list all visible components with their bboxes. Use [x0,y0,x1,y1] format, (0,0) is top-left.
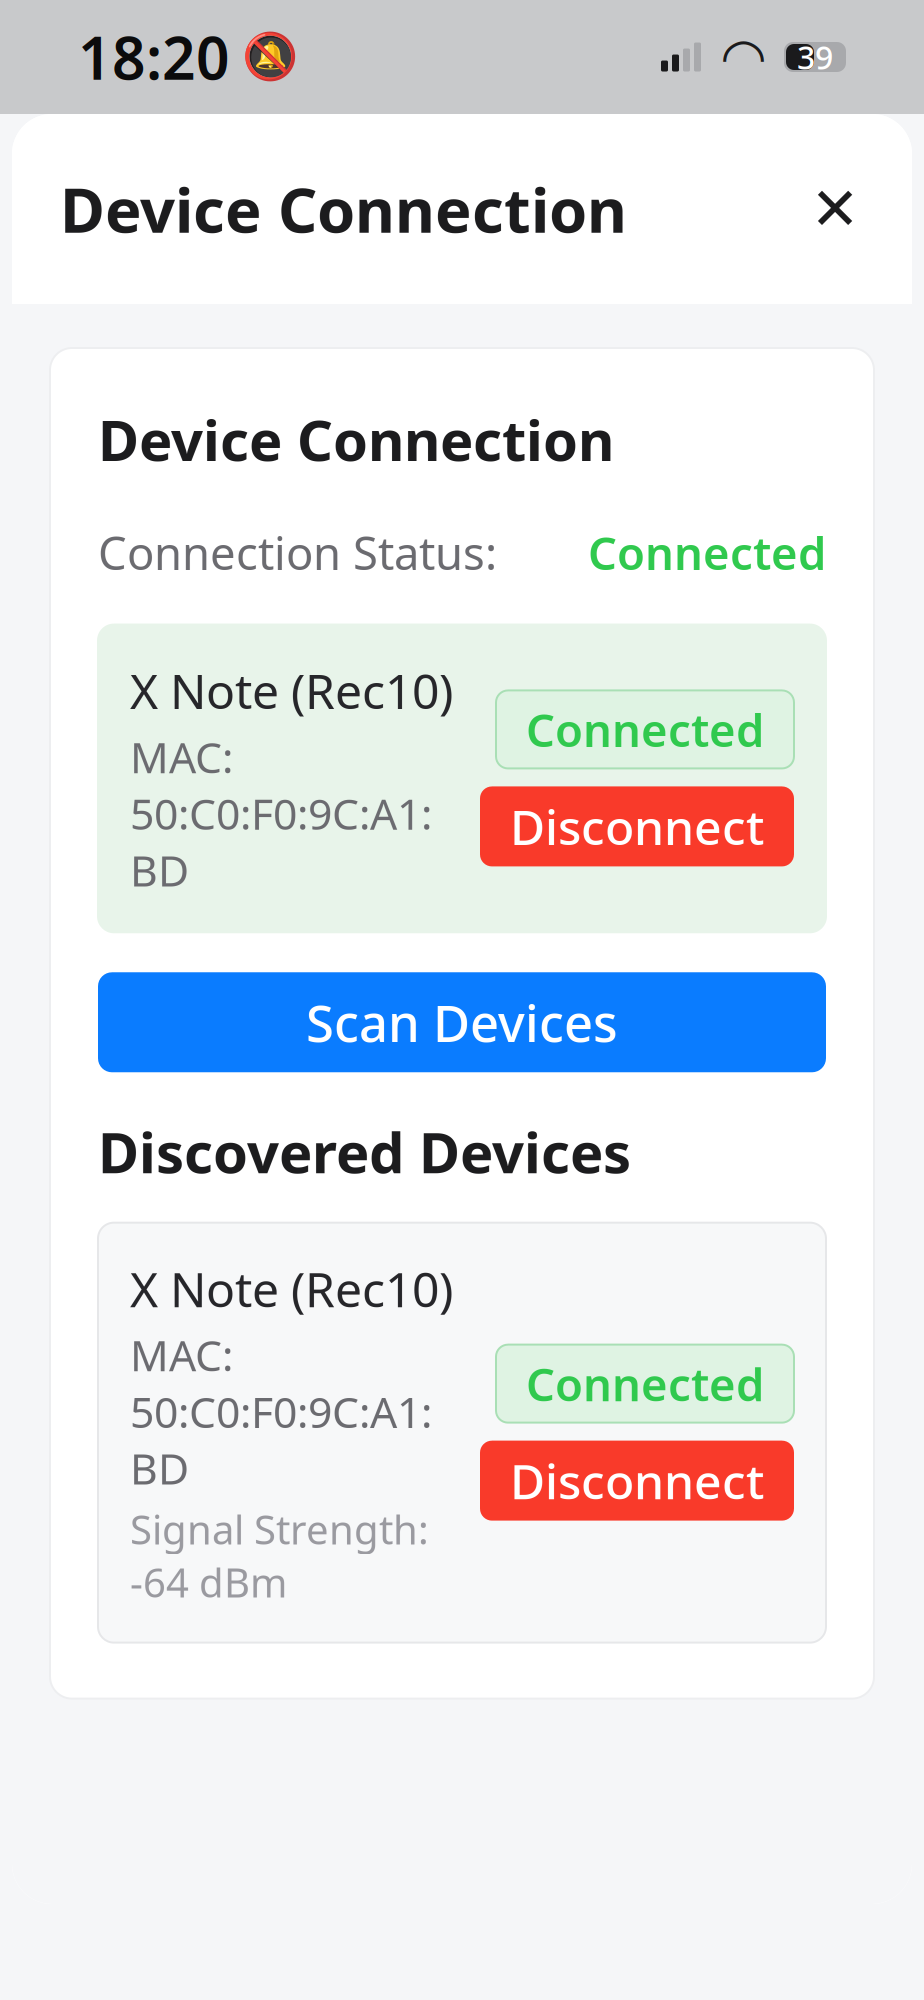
staticText: Discovered Devices [98,1114,631,1189]
staticText: Device Connection [60,168,627,250]
staticText: ✕ [810,176,859,242]
button[interactable]: Disconnect [480,1441,794,1521]
staticText: Connected [526,699,764,759]
button[interactable]: Disconnect [480,786,794,866]
staticText: ◠ [723,27,764,87]
staticText: Disconnect [510,795,764,858]
staticText: Connected [588,522,826,583]
staticText: 18:20 [78,18,230,96]
staticText: Device Connection [98,402,614,476]
staticText: 39 [797,36,833,78]
button[interactable]: Connected [496,690,794,768]
staticText: 🔕 [242,31,298,83]
button[interactable]: Scan Devices [98,972,826,1072]
button[interactable]: Connected [496,1345,794,1423]
button[interactable]: Close [798,172,872,246]
staticText: Signal Strength: -64 dBm [130,1502,429,1609]
staticText: X Note (Rec10) [130,659,453,722]
staticText: MAC: 50:C0:F0:9C:A1:BD [130,728,432,898]
staticText: Disconnect [510,1449,764,1512]
staticText: MAC: 50:C0:F0:9C:A1:BD [130,1326,432,1496]
staticText: Connection Status: [98,522,497,583]
staticText: Scan Devices [306,989,618,1056]
staticText: Connected [526,1353,764,1414]
staticText: X Note (Rec10) [130,1257,453,1320]
